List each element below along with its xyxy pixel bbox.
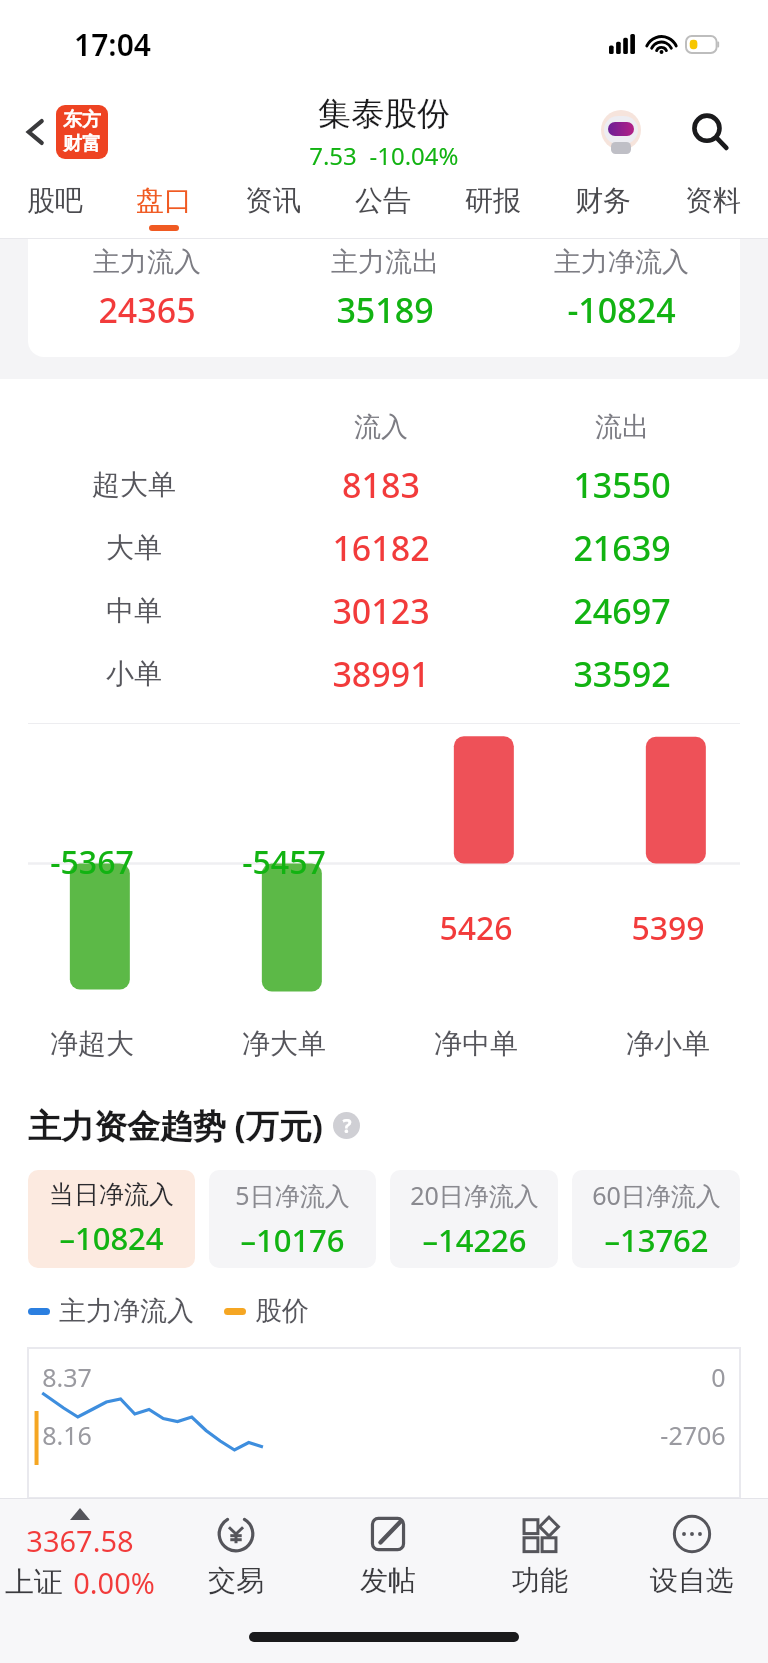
staticText: 盘口 [136, 183, 192, 218]
staticText: 16182 [332, 525, 430, 571]
staticText: 8.16 [42, 1418, 92, 1452]
staticText: 股价 [255, 1294, 309, 1328]
button[interactable]: 中单 [0, 579, 768, 642]
button[interactable]: Help [333, 1112, 360, 1139]
staticText: 35189 [336, 287, 434, 333]
button[interactable]: 小单 [0, 642, 768, 705]
staticText: -2706 [660, 1418, 726, 1452]
staticText: 股吧 [27, 183, 83, 218]
staticText: -10824 [567, 287, 676, 333]
staticText: 17:04 [74, 24, 151, 65]
button[interactable]: 财务 [548, 176, 658, 238]
button[interactable]: 资讯 [218, 176, 328, 238]
staticText: 主力流入 [93, 245, 201, 279]
staticText: 资讯 [245, 183, 301, 218]
staticText: 24365 [98, 287, 196, 333]
button[interactable]: 3367.58 [0, 1499, 160, 1611]
staticText: -5367 [50, 840, 134, 884]
button[interactable]: 60日净流入 [572, 1170, 740, 1268]
staticText: 5日净流入 [235, 1178, 350, 1212]
staticText: 中单 [106, 593, 162, 628]
staticText: 38991 [332, 651, 430, 697]
staticText: 30123 [332, 588, 430, 634]
staticText: 60日净流入 [592, 1178, 721, 1212]
staticText: 20日净流入 [410, 1178, 539, 1212]
button[interactable]: 5日净流入 [209, 1170, 376, 1268]
staticText: 5426 [439, 906, 513, 950]
staticText: 净超大 [50, 1026, 134, 1061]
staticText: 主力资金趋势 (万元) [28, 1103, 323, 1148]
staticText: 主力流出 [331, 245, 439, 279]
button[interactable]: 交易 [160, 1499, 312, 1611]
staticText: 功能 [512, 1563, 568, 1598]
button[interactable]: 当日净流入 [28, 1170, 195, 1268]
staticText: 研报 [465, 183, 521, 218]
button[interactable]: 东方财富 [56, 105, 108, 159]
staticText: 东方 [63, 108, 101, 132]
button[interactable]: 功能 [464, 1499, 616, 1611]
button[interactable]: Search [678, 100, 742, 164]
button[interactable]: 公告 [328, 176, 438, 238]
staticText: 主力净流入 [554, 245, 689, 279]
button[interactable]: 研报 [438, 176, 548, 238]
staticText: 财务 [575, 183, 631, 218]
staticText: –13762 [604, 1219, 709, 1261]
staticText: 集泰股份 [318, 93, 450, 135]
staticText: –10176 [240, 1219, 345, 1261]
staticText: -10.04% [369, 139, 459, 172]
staticText: 3367.58 [26, 1521, 134, 1560]
button[interactable]: AI 助手 [592, 103, 650, 161]
staticText: 主力净流入 [59, 1294, 194, 1328]
button[interactable]: 资料 [658, 176, 768, 238]
staticText: 设自选 [650, 1563, 734, 1598]
staticText: 资料 [685, 183, 741, 218]
staticText: 净大单 [242, 1026, 326, 1061]
staticText: –14226 [422, 1219, 527, 1261]
button[interactable]: 设自选 [616, 1499, 768, 1611]
staticText: 13550 [573, 462, 671, 508]
button[interactable]: Back [8, 104, 64, 160]
staticText: 流出 [595, 410, 649, 444]
button[interactable]: 主力流入 [28, 239, 740, 357]
staticText: 5399 [631, 906, 705, 950]
staticText: 上证 [5, 1564, 63, 1601]
staticText: 交易 [208, 1563, 264, 1598]
staticText: 21639 [573, 525, 671, 571]
staticText: -5457 [242, 840, 326, 884]
button[interactable]: 股吧 [0, 176, 109, 238]
staticText: 0 [711, 1360, 726, 1394]
button[interactable]: 超大单 [0, 453, 768, 516]
button[interactable]: 20日净流入 [390, 1170, 558, 1268]
staticText: –10824 [59, 1217, 164, 1259]
staticText: 33592 [573, 651, 671, 697]
staticText: 小单 [106, 656, 162, 691]
staticText: 财富 [63, 132, 101, 156]
button[interactable]: 大单 [0, 516, 768, 579]
staticText: 24697 [573, 588, 671, 634]
staticText: 8183 [342, 462, 420, 508]
staticText: 净中单 [434, 1026, 518, 1061]
staticText: 超大单 [92, 467, 176, 502]
staticText: 流入 [354, 410, 408, 444]
button[interactable]: 盘口 [109, 176, 218, 238]
staticText: 7.53 [309, 139, 357, 172]
button[interactable]: 发帖 [312, 1499, 464, 1611]
staticText: 0.00% [73, 1563, 155, 1602]
staticText: 8.37 [42, 1360, 92, 1394]
staticText: 公告 [355, 183, 411, 218]
staticText: 大单 [106, 530, 162, 565]
staticText: ? [342, 1113, 352, 1139]
staticText: 发帖 [360, 1563, 416, 1598]
staticText: 当日净流入 [49, 1179, 174, 1210]
staticText: 净小单 [626, 1026, 710, 1061]
